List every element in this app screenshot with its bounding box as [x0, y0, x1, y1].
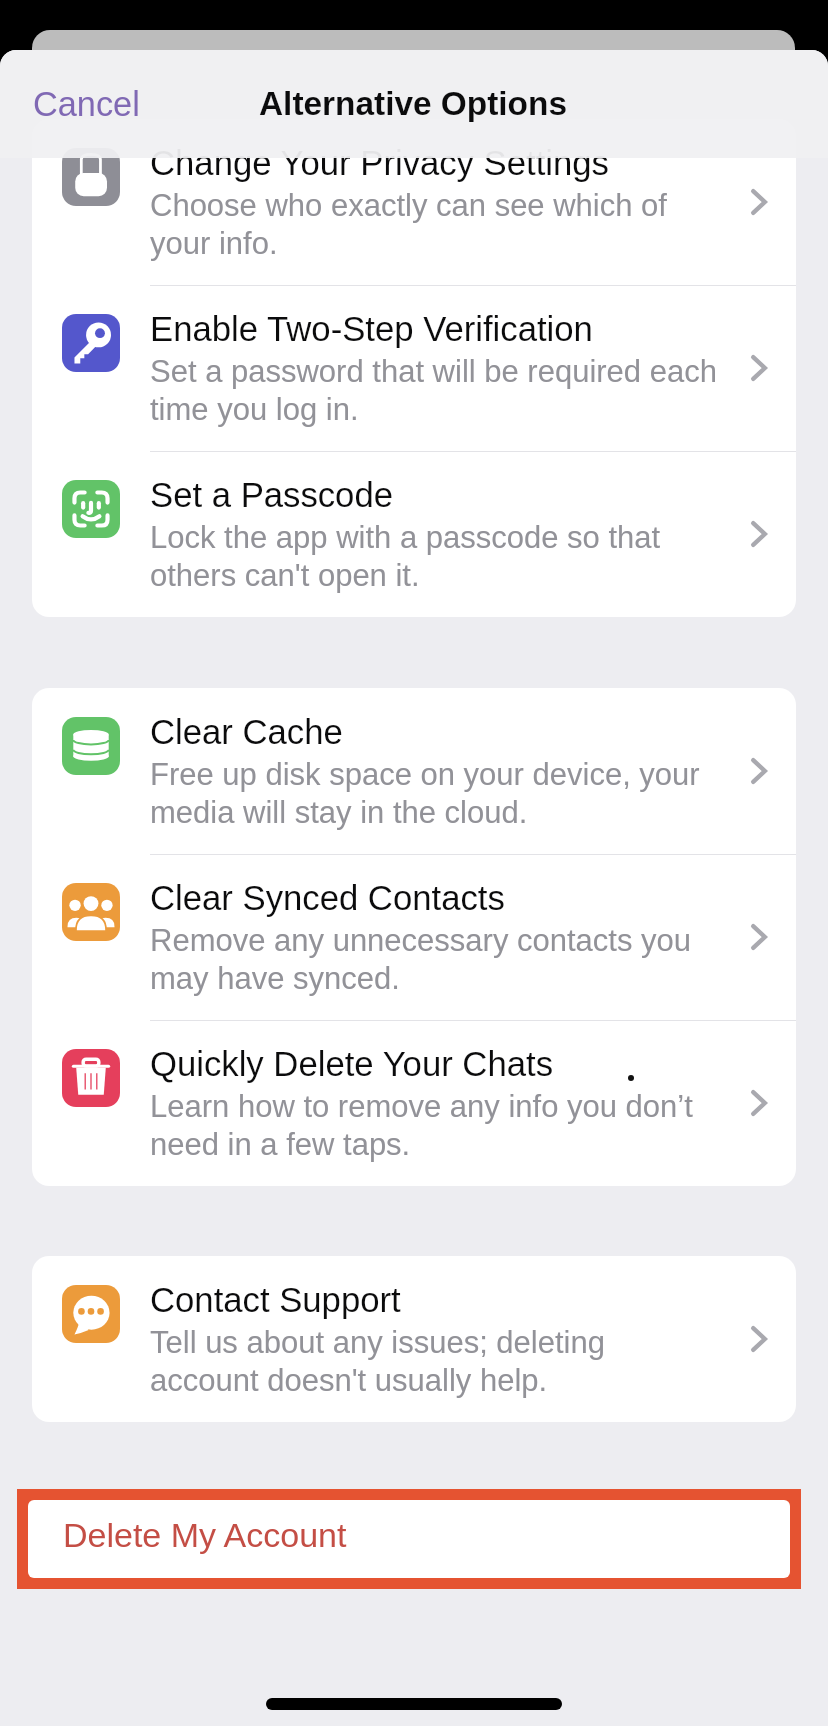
- button[interactable]: Contact Support: [32, 1256, 796, 1422]
- staticText: Enable Two-Step Verification: [150, 307, 593, 349]
- staticText: Clear Synced Contacts: [150, 876, 505, 918]
- staticText: Clear Cache: [150, 710, 343, 752]
- button[interactable]: Quickly Delete Your Chats: [32, 1020, 796, 1186]
- button[interactable]: Enable Two-Step Verification: [32, 285, 796, 451]
- staticText: Delete My Account: [63, 1516, 347, 1554]
- staticText: Cancel: [33, 85, 140, 123]
- staticText: Set a password that will be required eac…: [150, 352, 719, 428]
- staticText: Lock the app with a passcode so that oth…: [150, 518, 719, 594]
- staticText: Choose who exactly can see which of your…: [150, 186, 719, 262]
- button[interactable]: Cancel: [0, 71, 164, 137]
- button[interactable]: Clear Synced Contacts: [32, 854, 796, 1020]
- staticText: Remove any unnecessary contacts you may …: [150, 921, 719, 997]
- staticText: Change Your Privacy Settings: [150, 141, 609, 183]
- staticText: Contact Support: [150, 1278, 401, 1320]
- button[interactable]: Clear Cache: [32, 688, 796, 854]
- button[interactable]: Change Your Privacy Settings: [32, 119, 796, 285]
- staticText: Set a Passcode: [150, 473, 393, 515]
- staticText: Quickly Delete Your Chats: [150, 1042, 553, 1084]
- staticText: Tell us about any issues; deleting accou…: [150, 1323, 719, 1399]
- staticText: Learn how to remove any info you don’t n…: [150, 1087, 719, 1163]
- staticText: Alternative Options: [259, 85, 567, 122]
- button[interactable]: Set a Passcode: [32, 451, 796, 617]
- staticText: Free up disk space on your device, your …: [150, 755, 719, 831]
- button[interactable]: Delete My Account: [28, 1500, 790, 1578]
